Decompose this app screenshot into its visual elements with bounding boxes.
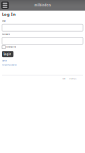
staticText: Sign Up	[2, 60, 7, 62]
button[interactable]: Login	[2, 51, 13, 57]
button[interactable]: Remember me	[2, 45, 16, 49]
staticText: Log In	[2, 11, 16, 17]
staticText: English (US)	[69, 78, 76, 79]
button[interactable]: Forgot Password?	[2, 63, 17, 67]
staticText: Remember me	[6, 46, 16, 48]
staticText: Email	[2, 20, 5, 22]
staticText: milbinders	[34, 3, 50, 7]
button[interactable]: English (US)	[69, 78, 76, 79]
button[interactable]: Full Site	[62, 78, 66, 79]
staticText: Login	[3, 52, 11, 56]
staticText: Password	[2, 33, 10, 35]
button[interactable]: Menu	[1, 1, 9, 9]
staticText: Forgot Password?	[2, 64, 17, 66]
button[interactable]: Sign Up	[2, 59, 7, 62]
staticText: Full Site	[62, 78, 66, 79]
